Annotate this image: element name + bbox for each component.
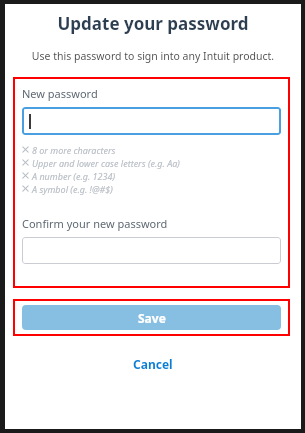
staticText: Confirm your new password	[22, 216, 168, 231]
staticText: Cancel	[133, 356, 173, 372]
staticText: Upper and lower case letters (e.g. Aa)	[32, 157, 180, 169]
staticText: New password	[22, 86, 98, 101]
staticText: A symbol (e.g. !@#$)	[32, 183, 113, 195]
staticText: A number (e.g. 1234)	[32, 170, 116, 182]
button[interactable]: Save	[22, 305, 281, 330]
staticText: 8 or more characters	[32, 144, 116, 156]
button[interactable]	[22, 107, 281, 135]
staticText: Use this password to sign into any Intui…	[5, 49, 301, 63]
button[interactable]: Cancel	[123, 353, 183, 375]
staticText: Save	[138, 310, 166, 326]
button[interactable]	[22, 237, 281, 264]
staticText: Update your password	[5, 12, 301, 35]
